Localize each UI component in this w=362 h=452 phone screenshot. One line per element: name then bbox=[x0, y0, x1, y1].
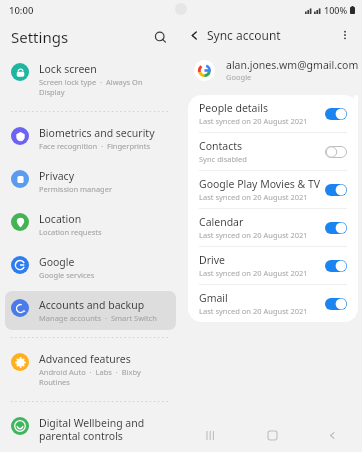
button[interactable]: Digital Wellbeing and parental controls bbox=[5, 409, 176, 450]
button[interactable]: Gmail bbox=[188, 285, 358, 322]
staticText: Last synced on 20 August 2021 bbox=[199, 306, 308, 316]
staticText: Location requests bbox=[39, 227, 102, 237]
staticText: Sync account bbox=[207, 27, 281, 43]
staticText: Gmail bbox=[199, 291, 228, 305]
staticText: Permission manager bbox=[39, 184, 113, 194]
staticText: Contacts bbox=[199, 139, 243, 153]
button[interactable]: Biometrics and security bbox=[5, 119, 176, 158]
staticText: Biometrics and security bbox=[39, 126, 155, 140]
staticText: Google Play Movies & TV bbox=[199, 177, 321, 191]
button[interactable]: Accounts and backup bbox=[5, 291, 176, 330]
staticText: Settings bbox=[11, 27, 69, 47]
button[interactable]: Advanced features bbox=[5, 345, 176, 394]
button[interactable]: Lock screen bbox=[5, 55, 176, 104]
button[interactable]: alan.jones.wm@gmail.com bbox=[181, 50, 362, 90]
staticText: Google bbox=[226, 72, 252, 82]
button[interactable]: Back bbox=[181, 22, 207, 48]
staticText: Last synced on 20 August 2021 bbox=[199, 230, 308, 240]
staticText: Last synced on 20 August 2021 bbox=[199, 268, 308, 278]
staticText: People details bbox=[199, 101, 268, 115]
staticText: Calendar bbox=[199, 215, 244, 229]
button[interactable]: Google Play Movies & TV bbox=[188, 171, 358, 208]
staticText: Digital Wellbeing and parental controls bbox=[39, 416, 170, 443]
staticText: 100% bbox=[324, 4, 348, 16]
button[interactable]: Search bbox=[147, 24, 173, 50]
staticText: Face recognition · Fingerprints bbox=[39, 141, 150, 151]
staticText: Advanced features bbox=[39, 352, 131, 366]
staticText: Last synced on 20 August 2021 bbox=[199, 116, 308, 126]
button[interactable]: Calendar bbox=[188, 209, 358, 246]
button[interactable]: Home bbox=[242, 418, 302, 452]
button[interactable]: People details bbox=[188, 95, 358, 132]
button[interactable]: More options bbox=[333, 23, 357, 47]
staticText: Drive bbox=[199, 253, 225, 267]
staticText: Screen lock type · Always On Display bbox=[39, 77, 170, 97]
staticText: Last synced on 20 August 2021 bbox=[199, 192, 308, 202]
button[interactable]: Drive bbox=[188, 247, 358, 284]
button[interactable]: Google bbox=[5, 248, 176, 287]
button[interactable]: Contacts bbox=[188, 133, 358, 170]
staticText: Android Auto · Labs · Bixby Routines bbox=[39, 367, 170, 387]
staticText: 10:00 bbox=[9, 4, 34, 17]
staticText: Sync disabled bbox=[199, 154, 247, 164]
staticText: Accounts and backup bbox=[39, 298, 145, 312]
button[interactable]: Back bbox=[302, 418, 362, 452]
button[interactable]: Recents bbox=[181, 418, 242, 452]
staticText: Google services bbox=[39, 270, 95, 280]
staticText: Privacy bbox=[39, 169, 75, 183]
button[interactable]: Privacy bbox=[5, 162, 176, 201]
staticText: alan.jones.wm@gmail.com bbox=[226, 58, 359, 72]
staticText: Google bbox=[39, 255, 75, 269]
button[interactable]: Location bbox=[5, 205, 176, 244]
staticText: Manage accounts · Smart Switch bbox=[39, 313, 157, 323]
staticText: Location bbox=[39, 212, 82, 226]
staticText: Lock screen bbox=[39, 62, 97, 76]
